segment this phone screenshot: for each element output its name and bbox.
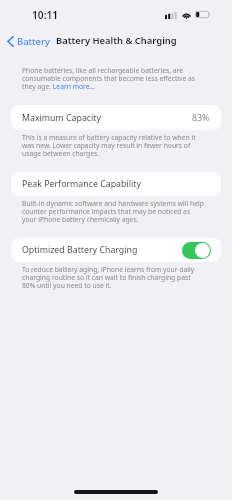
- staticText: 83%: [192, 112, 210, 124]
- button[interactable]: Optimized Battery Charging: [11, 238, 221, 262]
- staticText: Battery Health & Charging: [56, 34, 177, 47]
- button[interactable]: Maximum Capacity: [11, 105, 221, 130]
- staticText: Phone batteries, like all rechargeable b…: [22, 66, 204, 90]
- staticText: Optimized Battery Charging: [22, 244, 138, 256]
- button[interactable]: Peak Performance Capability: [11, 172, 221, 196]
- staticText: Built-in dynamic software and hardware s…: [22, 199, 204, 223]
- button[interactable]: Battery: [3, 32, 55, 50]
- staticText: To reduce battery aging, iPhone learns f…: [22, 265, 204, 289]
- staticText: This is a measure of battery capacity re…: [22, 133, 204, 157]
- staticText: 10:11: [32, 8, 59, 22]
- staticText: Peak Performance Capability: [22, 178, 141, 190]
- staticText: Maximum Capacity: [22, 112, 102, 124]
- button[interactable]: Optimized Battery Charging toggle: [182, 242, 211, 259]
- staticText: Battery: [17, 35, 50, 48]
